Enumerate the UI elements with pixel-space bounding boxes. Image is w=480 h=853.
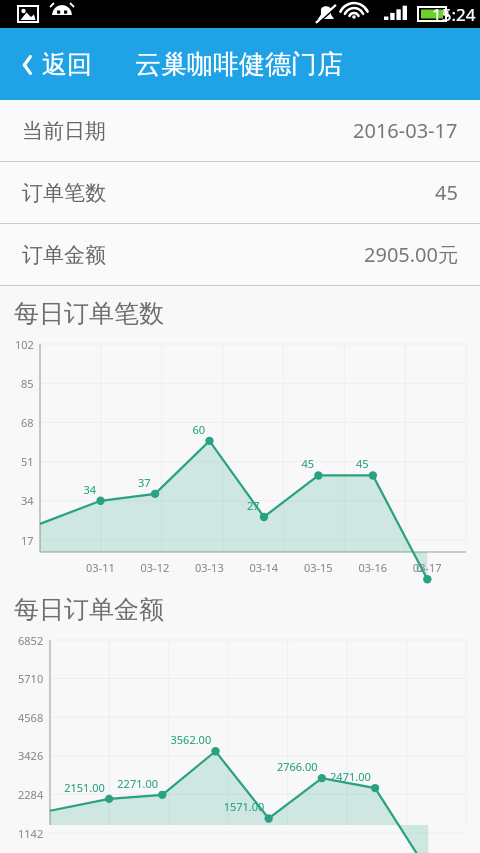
staticText: 订单金额 [22, 242, 106, 268]
button[interactable]: 订单笔数 [0, 162, 480, 223]
staticText: 2016-03-17 [353, 117, 458, 144]
staticText: 每日订单金额 [14, 594, 164, 625]
staticText: 45 [435, 179, 458, 206]
staticText: 返回 [42, 49, 92, 80]
button[interactable]: 当前日期 [0, 100, 480, 161]
staticText: 订单笔数 [22, 180, 106, 206]
staticText: 15:24 [432, 3, 476, 26]
button[interactable]: 返回 [10, 43, 100, 86]
button[interactable]: 订单金额 [0, 224, 480, 285]
staticText: 当前日期 [22, 118, 106, 144]
staticText: 2905.00元 [364, 241, 458, 268]
staticText: 每日订单笔数 [14, 298, 164, 329]
staticText: 云巢咖啡健德门店 [135, 48, 343, 81]
